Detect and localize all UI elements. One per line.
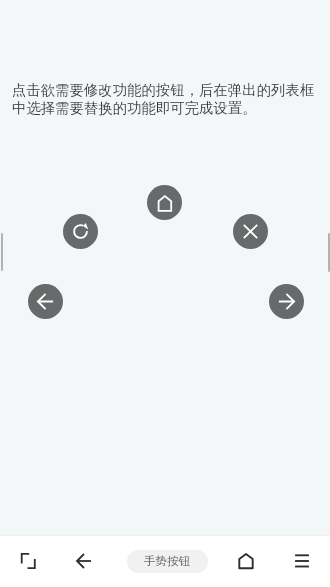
button[interactable]: Screenshot bbox=[10, 543, 46, 579]
button[interactable]: Back bbox=[66, 543, 102, 579]
button[interactable]: Menu bbox=[284, 543, 320, 579]
button[interactable]: Back bbox=[28, 284, 63, 319]
button[interactable]: Home bbox=[147, 185, 182, 220]
button[interactable]: Refresh bbox=[63, 214, 98, 249]
button[interactable]: 手势按钮 bbox=[127, 550, 208, 573]
button[interactable]: Close bbox=[233, 214, 268, 249]
button[interactable]: Forward bbox=[269, 284, 304, 319]
button[interactable]: Home bbox=[228, 543, 264, 579]
staticText: 手势按钮 bbox=[144, 554, 191, 569]
staticText: 点击欲需要修改功能的按钮，后在弹出的列表框中选择需要替换的功能即可完成设置。 bbox=[12, 81, 318, 117]
